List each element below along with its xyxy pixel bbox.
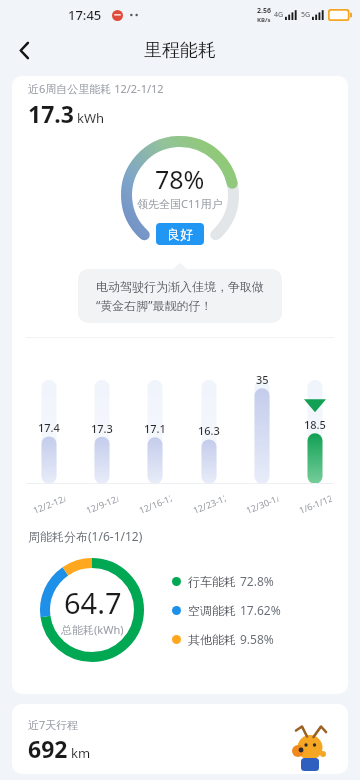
staticText: 17.1 <box>144 421 166 436</box>
staticText: 17.62% <box>240 602 281 618</box>
staticText: 良好 <box>167 226 193 242</box>
staticText: 总能耗(kWh) <box>61 622 124 637</box>
button[interactable]: 17.4 <box>32 358 66 484</box>
staticText: 近6周自公里能耗 12/2-1/12 <box>28 81 164 96</box>
staticText: 17.3 <box>28 98 74 129</box>
button[interactable]: 17.3 <box>85 358 119 484</box>
button[interactable]: 18.5 <box>298 358 332 484</box>
staticText: 2.56 <box>257 6 271 16</box>
staticText: 72.8% <box>240 573 274 589</box>
staticText: 64.7 <box>64 583 122 622</box>
button[interactable]: 16.3 <box>192 358 226 484</box>
staticText: 17.3 <box>91 421 113 436</box>
button[interactable]: 其他能耗 <box>172 631 274 647</box>
staticText: 空调能耗 <box>188 603 236 618</box>
staticText: km <box>71 744 91 762</box>
staticText: 12/30-1/5 <box>244 492 280 516</box>
staticText: 其他能耗 <box>188 632 236 647</box>
staticText: 12/9-12/15 <box>84 492 120 516</box>
staticText: 692 <box>28 733 68 764</box>
button[interactable]: 17.1 <box>138 358 172 484</box>
button[interactable]: 近7天行程 <box>12 704 348 774</box>
staticText: 4G <box>274 10 284 20</box>
staticText: KB/s <box>257 16 271 24</box>
button[interactable]: 35 <box>245 358 279 484</box>
staticText: 领先全国C11用户 <box>137 196 223 211</box>
staticText: 17.4 <box>38 420 60 435</box>
staticText: 行车能耗 <box>188 574 236 589</box>
staticText: 电动驾驶行为渐入佳境，争取做 “黄金右脚”最靓的仔！ <box>96 279 264 313</box>
staticText: 5G <box>301 10 311 20</box>
button[interactable]: 良好 <box>156 223 204 245</box>
staticText: 12/16-12/22 <box>137 492 173 516</box>
staticText: 9.58% <box>240 631 274 647</box>
staticText: 近7天行程 <box>28 717 79 732</box>
button[interactable]: 空调能耗 <box>172 602 281 618</box>
button[interactable]: 行车能耗 <box>172 573 274 589</box>
staticText: 78% <box>155 162 205 196</box>
staticText: 35 <box>256 372 269 387</box>
staticText: 12/23-12/29 <box>191 492 227 516</box>
staticText: 16.3 <box>198 423 220 438</box>
staticText: 17:45 <box>68 6 102 24</box>
button[interactable]: Back <box>5 31 43 69</box>
staticText: 1/6-1/12 <box>297 492 333 516</box>
staticText: 18.5 <box>304 417 326 432</box>
staticText: kWh <box>77 109 105 127</box>
staticText: 12/2-12/8 <box>31 492 67 516</box>
staticText: 周能耗分布(1/6-1/12) <box>28 528 143 544</box>
staticText: 里程能耗 <box>144 39 216 62</box>
